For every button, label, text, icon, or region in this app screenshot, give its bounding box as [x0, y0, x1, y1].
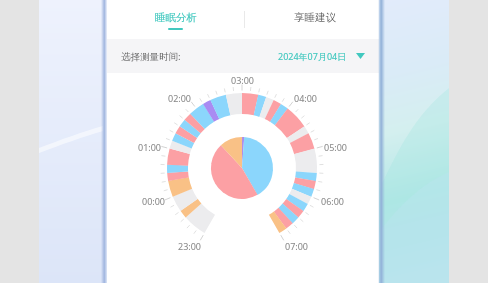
staticText: 06:00 [321, 195, 345, 207]
staticText: 2024年07月04日 [278, 50, 347, 62]
staticText: 睡眠分析 [155, 11, 197, 24]
other: Pick date [356, 53, 365, 59]
button[interactable]: 睡眠分析 [107, 0, 244, 39]
staticText: 23:00 [178, 240, 202, 252]
staticText: 01:00 [138, 141, 162, 153]
staticText: 04:00 [294, 92, 318, 104]
staticText: 02:00 [168, 92, 192, 104]
staticText: 03:00 [231, 74, 255, 86]
staticText: 05:00 [324, 141, 348, 153]
staticText: 选择测量时间: [121, 50, 181, 63]
staticText: 00:00 [142, 195, 166, 207]
staticText: 07:00 [285, 240, 309, 252]
staticText: 享睡建议 [294, 11, 336, 24]
button[interactable]: 2024年07月04日 [278, 50, 365, 62]
button[interactable]: 享睡建议 [245, 0, 379, 39]
